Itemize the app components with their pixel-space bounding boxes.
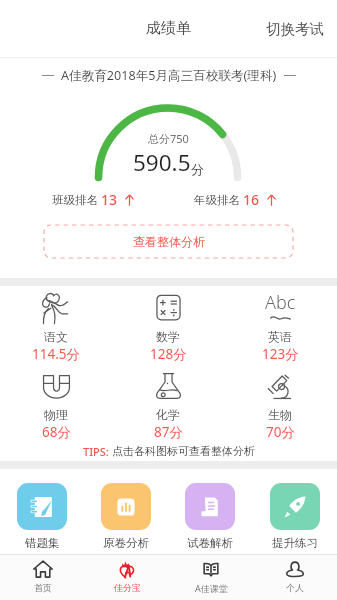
staticText: 数学 [156,329,180,344]
staticText: 70分 [266,423,295,441]
staticText: 123分 [262,345,299,363]
button[interactable]: 语文 [0,285,112,363]
staticText: 查看整体分析 [133,234,205,249]
staticText: 切换考试 [266,20,324,38]
staticText: 佳分宝 [114,582,141,593]
staticText: 首页 [34,582,52,593]
staticText: A佳教育2018年5月高三百校联考(理科) [61,67,277,83]
button[interactable]: 佳分宝 [85,555,169,600]
staticText: 分 [191,161,204,177]
button[interactable]: 查看整体分析 [44,225,293,258]
button[interactable]: 提升练习 [270,483,320,550]
staticText: 68分 [42,423,71,441]
button[interactable]: 班级排名 [52,188,134,211]
staticText: 提升练习 [272,536,318,550]
staticText: Abc [265,290,296,315]
staticText: 点击各科图标可查看整体分析 [112,444,255,458]
staticText: 成绩单 [146,19,191,38]
staticText: 生物 [268,407,292,422]
staticText: A佳课堂 [195,582,228,594]
button[interactable]: 年级排名 [194,188,276,211]
staticText: 128分 [150,345,187,363]
button[interactable]: Abc [224,285,336,363]
staticText: 16 [243,190,260,209]
staticText: 物理 [44,407,68,422]
button[interactable]: 首页 [0,555,85,600]
staticText: 13 [101,190,118,209]
button[interactable]: 化学 [112,363,224,441]
staticText: TIPS: [83,444,112,459]
button[interactable]: 生物 [224,363,336,441]
staticText: 年级排名 [194,193,240,207]
button[interactable]: 成绩单 [138,13,199,44]
staticText: 班级排名 [52,193,98,207]
staticText: 个人 [286,582,304,593]
staticText: 试卷解析 [187,536,233,550]
button[interactable]: 原卷分析 [101,483,151,550]
staticText: 87分 [154,423,183,441]
button[interactable]: 错题集 [17,483,67,550]
button[interactable]: A佳课堂 [169,555,253,600]
button[interactable]: 数学 [112,285,224,363]
button[interactable]: 物理 [0,363,112,441]
staticText: 114.5分 [32,345,81,363]
staticText: 英语 [268,329,292,344]
staticText: 原卷分析 [103,536,149,550]
staticText: 总分750 [148,131,189,146]
staticText: 590.5 [133,147,191,178]
staticText: 错题集 [25,536,60,550]
button[interactable]: 切换考试 [250,10,337,48]
button[interactable]: 试卷解析 [185,483,235,550]
staticText: 化学 [156,407,180,422]
staticText: 语文 [44,329,68,344]
button[interactable]: 个人 [253,555,337,600]
